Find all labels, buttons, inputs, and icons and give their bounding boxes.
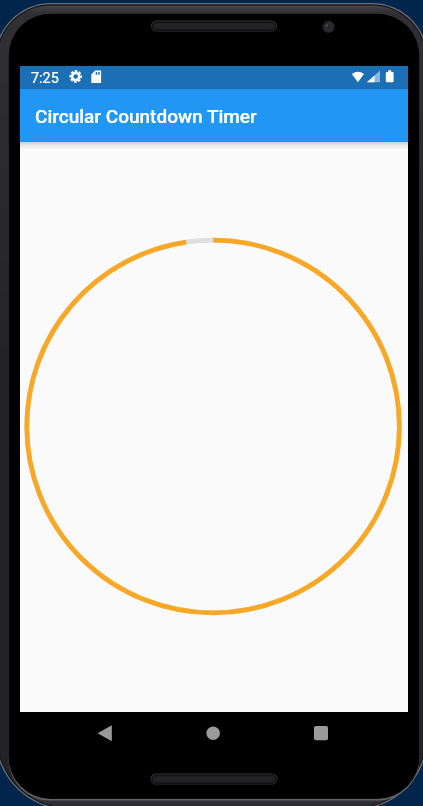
button[interactable]: Recents: [306, 720, 336, 750]
staticText: Circular Countdown Timer: [35, 105, 257, 127]
button[interactable]: Circular Countdown Timer: [20, 89, 408, 142]
staticText: 7:25: [31, 70, 59, 87]
button[interactable]: Home: [198, 720, 228, 750]
button[interactable]: Back: [90, 720, 120, 750]
